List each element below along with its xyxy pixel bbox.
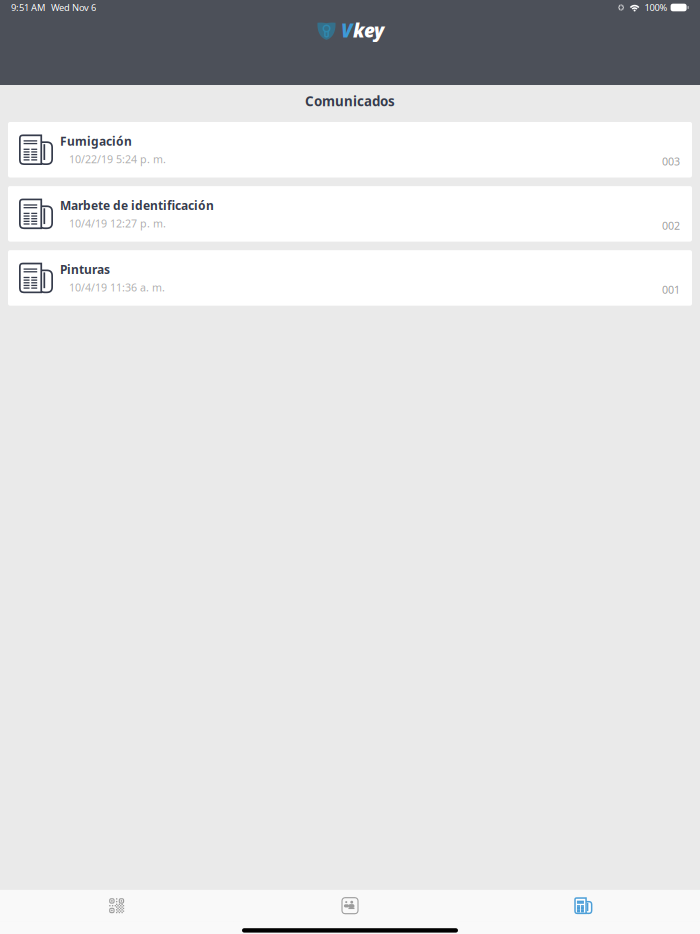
staticText: V <box>341 18 353 43</box>
staticText: Fumigación <box>60 133 132 149</box>
staticText: 10/22/19 5:24 p. m. <box>69 152 166 166</box>
staticText: 002 <box>662 218 680 233</box>
button[interactable]: Visitantes <box>233 890 467 922</box>
staticText: 9:51 AM <box>11 1 45 14</box>
staticText: 100% <box>645 1 668 14</box>
button[interactable]: Comunicados <box>467 890 700 922</box>
button[interactable]: Marbete de identificación <box>8 186 692 242</box>
staticText: 10/4/19 11:36 a. m. <box>69 280 165 294</box>
staticText: key <box>353 18 384 43</box>
staticText: Pinturas <box>60 261 110 277</box>
staticText: 001 <box>662 282 680 297</box>
staticText: Comunicados <box>305 92 395 110</box>
staticText: Wed Nov 6 <box>45 1 96 14</box>
button[interactable]: Fumigación <box>8 122 692 177</box>
button[interactable]: Pinturas <box>8 250 692 306</box>
staticText: Marbete de identificación <box>60 197 214 213</box>
staticText: 003 <box>662 154 680 168</box>
button[interactable]: Códigos QR <box>0 890 233 922</box>
staticText: 10/4/19 12:27 p. m. <box>69 216 166 230</box>
